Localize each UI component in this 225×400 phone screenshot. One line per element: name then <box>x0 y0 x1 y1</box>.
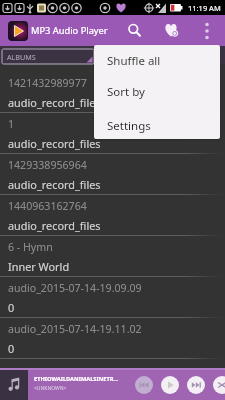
staticText: 11:19 AM <box>188 3 221 13</box>
button[interactable]: 1429338956964 <box>0 154 225 195</box>
button[interactable]: 6 - Hymn <box>0 236 225 277</box>
staticText: audio_record_files <box>8 136 101 151</box>
staticText: 0 <box>8 300 15 315</box>
staticText: 6 - Hymn <box>8 240 53 254</box>
staticText: 1 <box>8 117 15 131</box>
button[interactable]: audio_2015-07-14-19.11.02 <box>0 318 225 359</box>
button[interactable]: Sort by <box>94 76 220 107</box>
button[interactable] <box>158 15 185 46</box>
staticText: ETHIOWAILDANIMALSINETR... <box>34 375 119 383</box>
button[interactable] <box>0 370 28 400</box>
staticText: Inner World <box>8 259 70 274</box>
button[interactable]: audio_2015-07-14-19.09.09 <box>0 277 225 318</box>
button[interactable]: 1421432989977 <box>0 72 225 113</box>
staticText: audio_2015-07-14-19.11.02 <box>8 322 142 336</box>
staticText: Shuffle all <box>107 53 161 69</box>
button[interactable] <box>213 376 225 394</box>
button[interactable] <box>161 376 179 394</box>
button[interactable]: ALBUMS <box>2 49 94 64</box>
button[interactable]: Shuffle all <box>94 45 220 77</box>
staticText: <UNKNOWN> <box>34 385 67 392</box>
staticText: 1429338956964 <box>8 158 87 172</box>
staticText: ALBUMS <box>7 52 36 62</box>
staticText: 0 <box>8 341 15 356</box>
staticText: audio_record_files <box>8 177 101 192</box>
button[interactable] <box>196 15 217 46</box>
staticText: Sort by <box>107 84 145 100</box>
staticText: MP3 Audio Player <box>31 24 108 37</box>
staticText: Settings <box>107 118 151 134</box>
button[interactable]: 1440963162764 <box>0 195 225 236</box>
staticText: audio_record_files <box>8 218 101 233</box>
staticText: audio_record_files <box>8 95 101 110</box>
button[interactable] <box>122 15 148 46</box>
staticText: 1440963162764 <box>8 199 87 213</box>
button[interactable]: Settings <box>94 113 220 139</box>
button[interactable] <box>135 376 153 394</box>
staticText: audio_2015-07-14-19.09.09 <box>8 281 142 295</box>
button[interactable]: 1 <box>0 113 225 154</box>
staticText: 1421432989977 <box>8 76 87 90</box>
button[interactable] <box>187 376 205 394</box>
